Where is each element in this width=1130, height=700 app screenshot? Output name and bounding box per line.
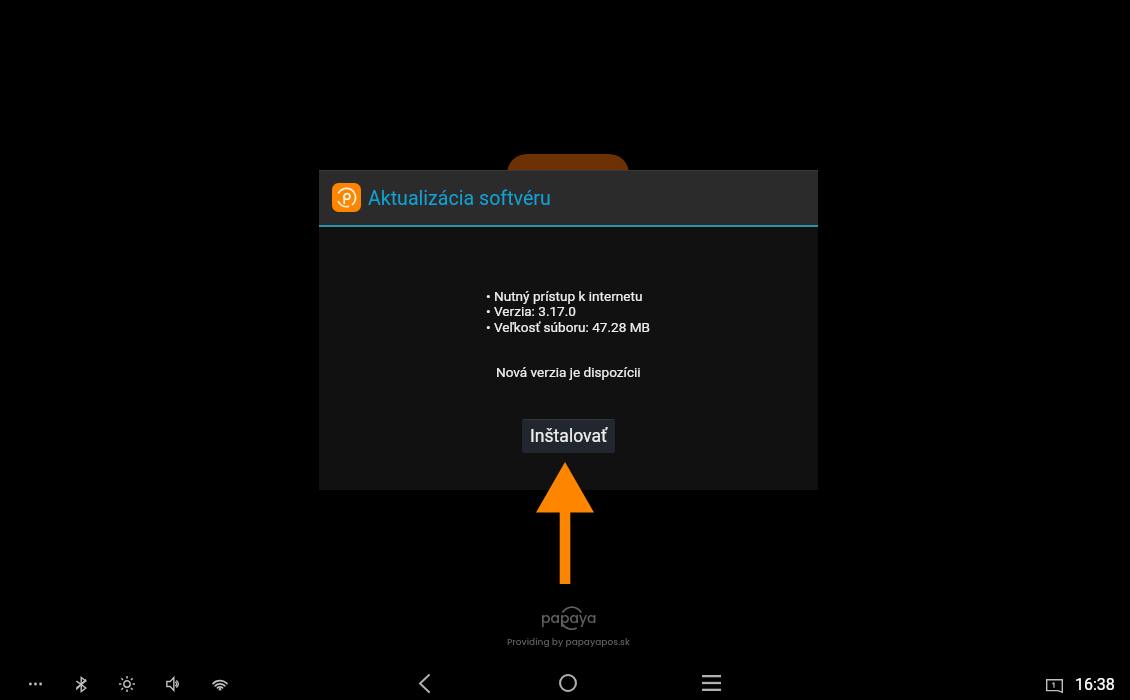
staticText: • Nutný prístup k internetu • Verzia: 3.… xyxy=(486,288,651,336)
button[interactable]: Bluetooth off xyxy=(64,667,98,700)
staticText: Inštalovať xyxy=(530,426,608,447)
staticText: papaya xyxy=(541,608,597,628)
button[interactable]: Back xyxy=(403,663,445,700)
button[interactable]: Brightness xyxy=(110,667,144,700)
button[interactable]: Inštalovať xyxy=(522,419,615,453)
button[interactable]: More options xyxy=(18,667,52,700)
button[interactable]: Recent apps xyxy=(690,663,732,700)
staticText: Nová verzia je dispozícii xyxy=(496,364,641,380)
button[interactable]: Wi-Fi xyxy=(203,667,237,700)
button[interactable]: Screenshot xyxy=(1039,671,1069,700)
staticText: Aktualizácia softvéru xyxy=(368,187,551,210)
button[interactable]: Volume xyxy=(156,667,190,700)
staticText: Providing by papayapos.sk xyxy=(507,636,630,649)
button[interactable]: Home xyxy=(547,663,589,700)
staticText: 16:38 xyxy=(1075,675,1115,694)
